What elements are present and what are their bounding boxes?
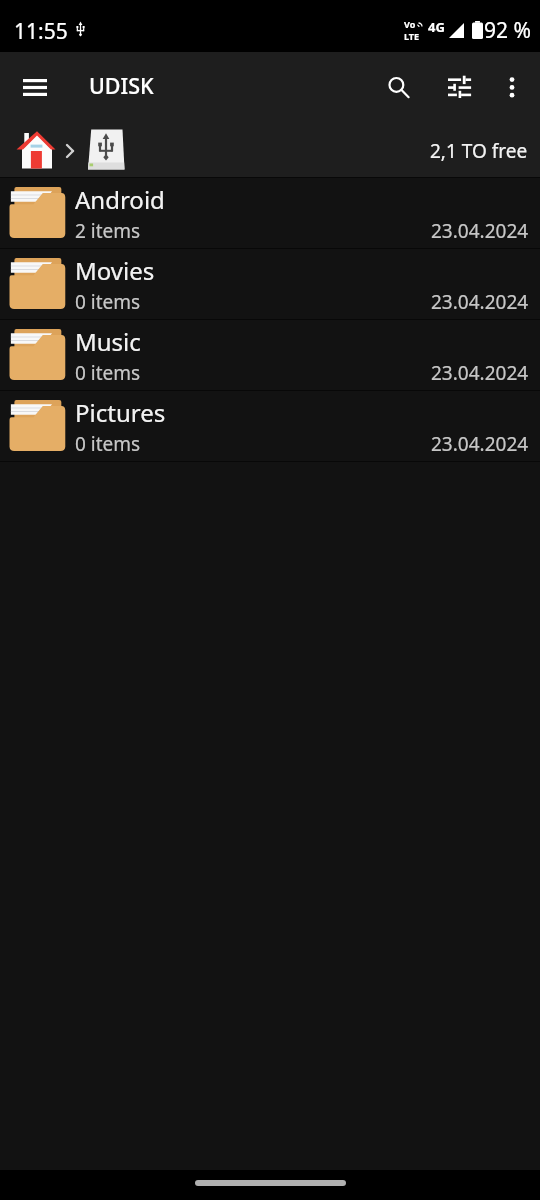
staticText: UDISK bbox=[89, 71, 154, 100]
staticText: 0 items bbox=[75, 289, 141, 315]
button[interactable]: Music bbox=[0, 320, 540, 390]
staticText: 23.04.2024 bbox=[431, 289, 529, 315]
button[interactable]: Pictures bbox=[0, 391, 540, 461]
staticText: 92 % bbox=[484, 16, 531, 45]
staticText: 0 items bbox=[75, 360, 141, 386]
button[interactable]: Home bbox=[10, 125, 62, 177]
button[interactable]: Menu bbox=[7, 59, 63, 115]
button[interactable]: USB drive bbox=[84, 125, 129, 177]
staticText: Android bbox=[75, 183, 165, 216]
staticText: 0 items bbox=[75, 431, 141, 457]
button[interactable]: Android bbox=[0, 178, 540, 248]
staticText: 23.04.2024 bbox=[431, 218, 529, 244]
staticText: LTE bbox=[404, 30, 420, 42]
staticText: Movies bbox=[75, 254, 155, 287]
button[interactable]: Sort options bbox=[432, 60, 488, 116]
staticText: 11:55 bbox=[14, 17, 68, 46]
staticText: 23.04.2024 bbox=[431, 360, 529, 386]
button[interactable]: Movies bbox=[0, 249, 540, 319]
staticText: 2 items bbox=[75, 218, 141, 244]
button[interactable]: More options bbox=[484, 60, 540, 116]
staticText: Pictures bbox=[75, 396, 166, 429]
button[interactable]: Search bbox=[371, 60, 427, 116]
staticText: Vo bbox=[404, 18, 416, 30]
staticText: Music bbox=[75, 325, 141, 358]
staticText: 23.04.2024 bbox=[431, 431, 529, 457]
staticText: 2,1 TO free bbox=[430, 138, 528, 164]
staticText: 4G bbox=[428, 18, 445, 36]
